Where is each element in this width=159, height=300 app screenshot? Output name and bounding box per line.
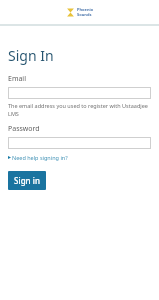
staticText: Sign In (8, 46, 54, 65)
button[interactable] (8, 87, 151, 99)
button[interactable]: Need help signing in? (8, 154, 68, 161)
staticText: Need help signing in? (12, 154, 68, 161)
staticText: Sounds (77, 12, 92, 17)
button[interactable] (8, 137, 151, 149)
button[interactable]: Sign in (8, 171, 46, 190)
staticText: The email address you used to register w… (8, 102, 151, 118)
staticText: Sign in (14, 175, 40, 186)
staticText: Password (8, 124, 40, 134)
staticText: Phoenix (77, 7, 94, 12)
staticText: Email (8, 74, 26, 84)
